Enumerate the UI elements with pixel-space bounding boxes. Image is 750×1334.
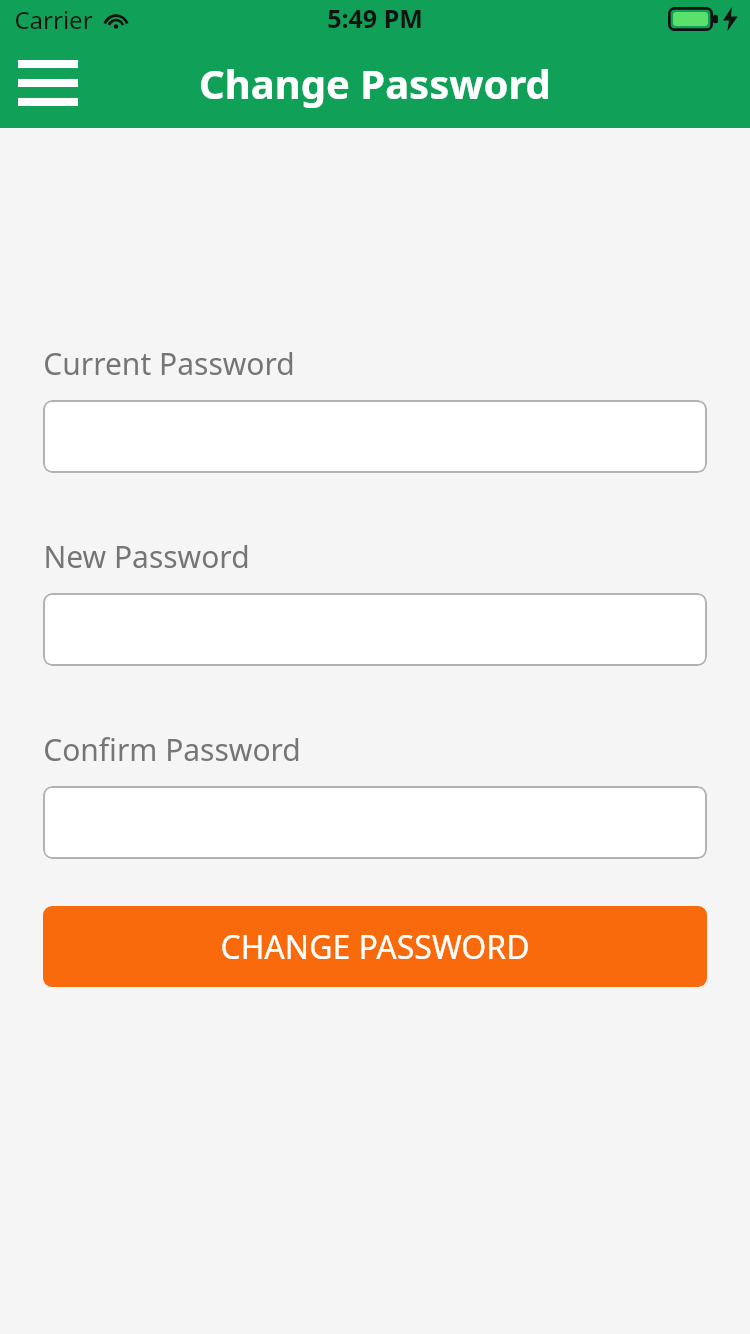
staticText: Carrier (14, 3, 93, 36)
staticText: 5:49 PM (327, 1, 423, 35)
staticText: CHANGE PASSWORD (220, 925, 530, 969)
button[interactable]: Open navigation menu (12, 52, 84, 114)
staticText: Current Password (43, 343, 295, 384)
staticText: Confirm Password (43, 729, 301, 770)
button[interactable]: Confirm Password (43, 786, 707, 859)
staticText: New Password (43, 536, 250, 577)
button[interactable]: Current Password (43, 400, 707, 473)
button[interactable]: New Password (43, 593, 707, 666)
staticText: Change Password (199, 56, 551, 110)
button[interactable]: CHANGE PASSWORD (43, 906, 707, 987)
